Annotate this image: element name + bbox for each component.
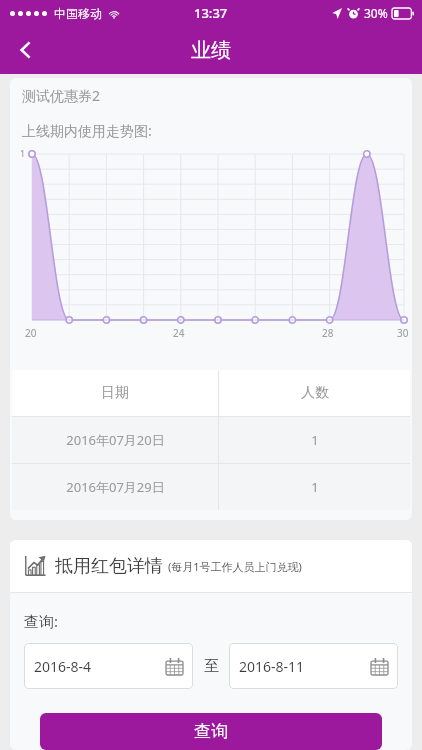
staticText: 查询: [24,611,59,631]
staticText: 中国移动 [54,6,102,21]
staticText: 抵用红包详情 [55,555,163,578]
button[interactable]: Back [0,26,52,74]
staticText: 13:37 [194,4,228,22]
other: Pick date [371,658,388,675]
staticText: 上线期内使用走势图: [22,121,152,140]
staticText: 2016年07月29日 [66,478,165,496]
other: Pick date [166,658,183,675]
staticText: 20 [25,326,37,340]
staticText: 人数 [301,384,329,402]
staticText: 30 [397,326,409,340]
staticText: 2016-8-11 [239,657,305,676]
staticText: 1 [311,431,319,449]
staticText: 至 [204,657,219,676]
button[interactable]: 2016-8-4 [24,643,193,689]
staticText: 28 [322,326,334,340]
staticText: 业绩 [191,38,231,63]
staticText: 查询 [194,721,228,742]
staticText: 2016年07月20日 [66,431,165,449]
staticText: 2016-8-4 [34,657,92,676]
staticText: 1 [311,478,319,496]
button[interactable]: 查询 [40,713,382,750]
button[interactable]: 2016-8-11 [229,643,398,689]
staticText: 日期 [101,384,129,402]
staticText: 30% [364,5,388,21]
staticText: 24 [173,326,185,340]
staticText: 1 [20,147,26,159]
staticText: (每月1号工作人员上门兑现) [168,559,302,574]
staticText: 测试优惠券2 [22,86,101,105]
